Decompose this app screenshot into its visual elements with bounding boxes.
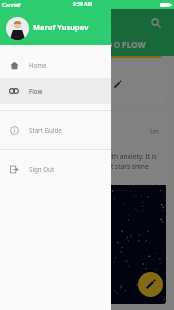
button[interactable] — [8, 65, 166, 104]
button[interactable]: 1m — [8, 113, 166, 304]
staticText: Start Guide — [29, 126, 62, 134]
button[interactable]: Search — [151, 18, 161, 28]
button[interactable]: Sign Out — [0, 156, 111, 182]
staticText: 1m — [149, 127, 159, 136]
button[interactable]: Start Guide — [0, 117, 111, 143]
button[interactable]: Home — [0, 52, 111, 78]
button[interactable]: Flow — [0, 78, 111, 104]
button[interactable]: New entry — [138, 272, 163, 297]
staticText: 9:59 AM — [73, 1, 93, 8]
staticText: Flow — [29, 87, 43, 95]
staticText: Sign Out — [29, 165, 55, 173]
staticText: Maruf Yusupov — [33, 22, 89, 32]
staticText: FLOW — [122, 39, 146, 50]
staticText: Try not to face each new day with anxiet… — [15, 152, 159, 171]
staticText: Home — [29, 61, 47, 69]
staticText: Carrier — [2, 1, 21, 8]
